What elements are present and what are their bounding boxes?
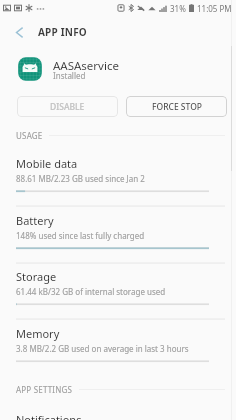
staticText: 148% used since last fully charged [16, 230, 145, 241]
staticText: DISABLE [50, 101, 85, 113]
staticText: 88.61 MB/2.23 GB used since Jan 2 [16, 173, 145, 184]
staticText: Mobile data [16, 156, 78, 171]
staticText: Memory [16, 326, 60, 341]
staticText: FORCE STOP [152, 101, 202, 113]
staticText: 11:05 PM [197, 3, 232, 14]
staticText: USAGE [16, 130, 43, 141]
button[interactable]: Notifications [0, 408, 236, 420]
staticText: 61.44 kB/32 GB of internal storage used [16, 286, 166, 297]
button[interactable]: Back [5, 18, 33, 46]
button[interactable]: Storage [0, 268, 236, 320]
button[interactable]: Mobile data [0, 155, 236, 207]
staticText: 31% [170, 3, 186, 14]
staticText: APP SETTINGS [16, 384, 73, 395]
button[interactable]: Battery [0, 212, 236, 264]
staticText: Notifications [16, 412, 82, 420]
staticText: APP INFO [38, 25, 87, 39]
staticText: AASAservice [53, 58, 119, 74]
button[interactable]: DISABLE [17, 96, 118, 117]
staticText: Battery [16, 213, 54, 228]
staticText: Installed [53, 70, 86, 81]
button[interactable]: FORCE STOP [126, 96, 227, 117]
staticText: Storage [16, 269, 57, 284]
staticText: 3.8 MB/2.2 GB used on average in last 3 … [16, 343, 189, 354]
button[interactable]: Memory [0, 325, 236, 377]
